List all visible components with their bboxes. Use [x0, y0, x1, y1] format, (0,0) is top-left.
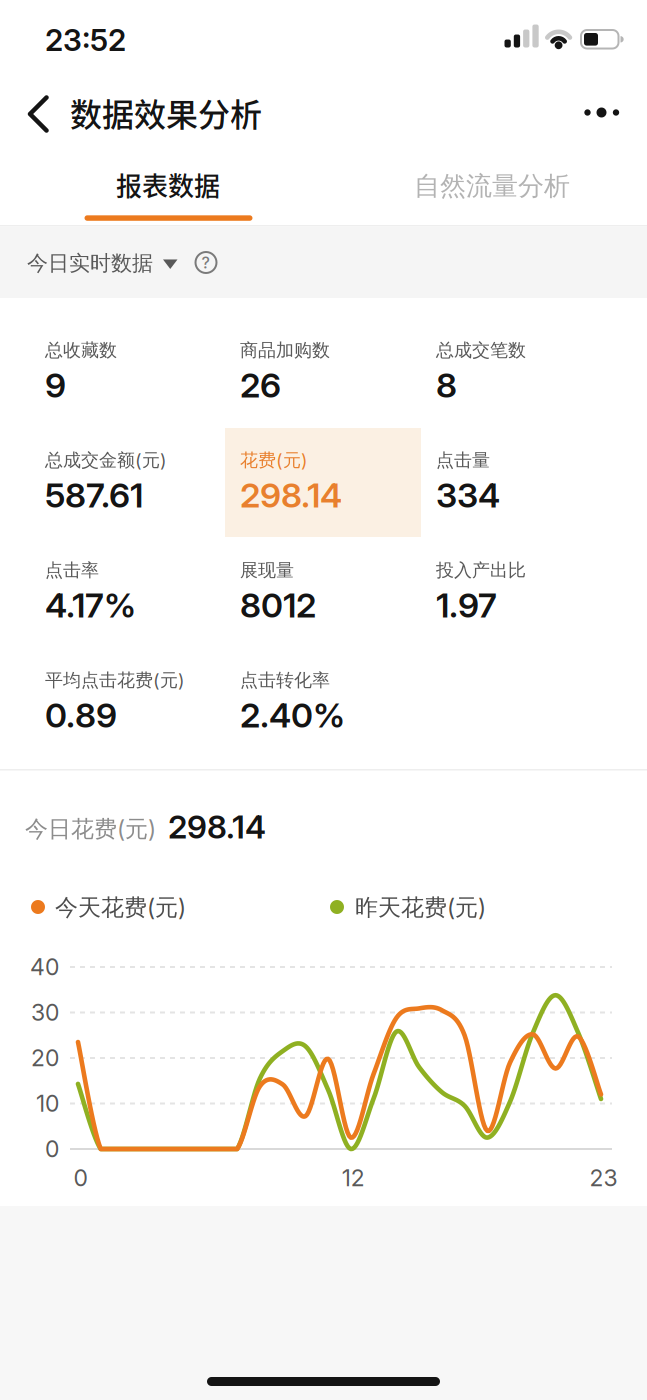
staticText: 投入产出比 [436, 559, 526, 582]
button[interactable]: Back [30, 94, 54, 134]
button[interactable]: 总成交金额(元) [30, 428, 225, 537]
staticText: 8012 [240, 585, 316, 626]
staticText: 334 [436, 475, 500, 516]
staticText: 花费(元) [240, 449, 308, 472]
staticText: 587.61 [45, 475, 143, 516]
staticText: 平均点击花费(元) [45, 669, 185, 692]
staticText: 4.17% [45, 585, 136, 626]
staticText: 今天花费(元) [55, 893, 186, 922]
button[interactable]: 商品加购数 [225, 318, 421, 427]
staticText: 昨天花费(元) [355, 893, 486, 922]
staticText: 298.14 [168, 807, 266, 846]
button[interactable]: 点击率 [30, 538, 225, 647]
button[interactable]: More [578, 97, 625, 128]
staticText: 12 [342, 1164, 365, 1192]
staticText: 2.40% [240, 695, 345, 736]
button[interactable]: 花费(元) [225, 428, 421, 537]
staticText: 展现量 [240, 559, 294, 582]
staticText: 0 [45, 1135, 59, 1163]
staticText: 自然流量分析 [414, 170, 570, 202]
staticText: 23:52 [45, 22, 126, 58]
staticText: 数据效果分析 [70, 89, 262, 136]
staticText: 0.89 [45, 695, 117, 736]
staticText: 点击率 [45, 559, 99, 582]
staticText: 总收藏数 [45, 339, 117, 362]
staticText: 点击转化率 [240, 669, 330, 692]
staticText: 0 [73, 1164, 87, 1192]
staticText: 商品加购数 [240, 339, 330, 362]
button[interactable]: 报表数据 [48, 154, 288, 214]
staticText: 报表数据 [116, 166, 220, 203]
button[interactable]: 点击量 [421, 428, 617, 537]
staticText: 10 [36, 1089, 59, 1117]
staticText: 20 [31, 1044, 59, 1072]
button[interactable]: 自然流量分析 [372, 156, 612, 216]
button[interactable]: Help [194, 251, 217, 274]
staticText: 26 [240, 365, 281, 406]
staticText: 9 [45, 365, 66, 406]
staticText: 298.14 [240, 475, 342, 516]
staticText: 1.97 [436, 585, 497, 626]
staticText: 40 [30, 953, 59, 981]
button[interactable]: 总收藏数 [30, 318, 225, 427]
staticText: 总成交笔数 [436, 339, 526, 362]
staticText: 点击量 [436, 449, 490, 472]
staticText: 30 [31, 998, 59, 1026]
staticText: 总成交金额(元) [45, 449, 167, 472]
staticText: 8 [436, 365, 457, 406]
button[interactable]: 总成交笔数 [421, 318, 617, 427]
button[interactable]: 今日实时数据 [27, 250, 177, 276]
button[interactable]: 平均点击花费(元) [30, 648, 225, 757]
staticText: 今日花费(元) [25, 814, 156, 843]
staticText: 23 [589, 1164, 617, 1192]
staticText: ? [201, 253, 209, 272]
button[interactable]: 投入产出比 [421, 538, 617, 647]
staticText: 今日实时数据 [27, 250, 153, 276]
button[interactable]: 点击转化率 [225, 648, 421, 757]
button[interactable]: 展现量 [225, 538, 421, 647]
